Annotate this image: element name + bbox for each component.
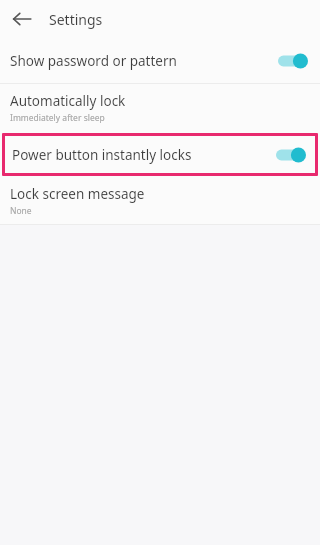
button[interactable]: Back xyxy=(10,7,34,31)
staticText: Show password or pattern xyxy=(10,52,177,70)
staticText: Settings xyxy=(49,10,103,29)
button[interactable]: Toggle Power button instantly locks xyxy=(276,146,306,164)
button[interactable]: Toggle Show password or pattern xyxy=(278,52,308,70)
staticText: Immediately after sleep xyxy=(10,112,105,124)
button[interactable]: Lock screen message xyxy=(0,178,320,224)
staticText: Automatically lock xyxy=(10,92,126,110)
button[interactable]: Power button instantly locks xyxy=(2,134,318,175)
staticText: Lock screen message xyxy=(10,185,145,203)
button[interactable]: Automatically lock xyxy=(0,84,320,131)
staticText: Power button instantly locks xyxy=(12,146,192,164)
button[interactable]: Show password or pattern xyxy=(0,38,320,83)
staticText: None xyxy=(10,205,32,217)
